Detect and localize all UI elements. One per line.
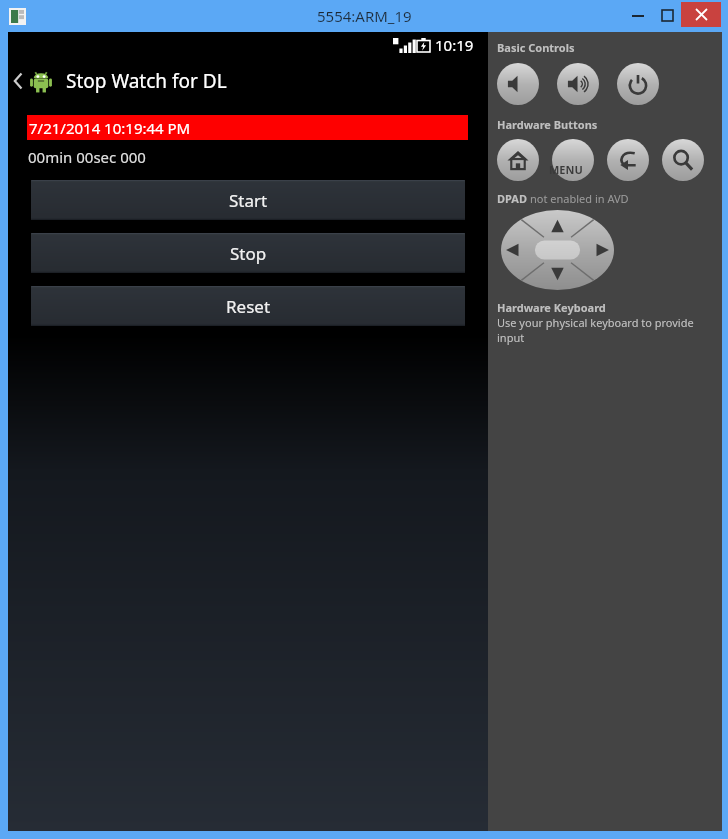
button[interactable]: Back xyxy=(607,139,649,181)
button[interactable]: Menu xyxy=(552,139,594,181)
staticText: 7/21/2014 10:19:44 PM xyxy=(29,118,191,138)
button[interactable]: Power xyxy=(617,63,659,105)
staticText: Hardware Keyboard xyxy=(497,300,606,315)
other: Emulator icon xyxy=(9,8,26,25)
staticText: Basic Controls xyxy=(497,40,575,55)
staticText: 5554:ARM_19 xyxy=(317,6,412,26)
button[interactable]: Home xyxy=(497,139,539,181)
button[interactable]: Volume down xyxy=(497,63,539,105)
button[interactable]: Close xyxy=(681,2,721,27)
button[interactable]: Stop xyxy=(31,233,465,273)
staticText: DPAD xyxy=(497,191,530,206)
button[interactable]: Search xyxy=(662,139,704,181)
staticText: Stop xyxy=(230,242,267,265)
button[interactable]: Minimize xyxy=(623,0,653,30)
staticText: Use your physical keyboard to provide in… xyxy=(497,315,722,345)
staticText: Reset xyxy=(226,295,271,318)
button[interactable]: Reset xyxy=(31,286,465,326)
staticText: 10:19 xyxy=(435,35,474,55)
staticText: Start xyxy=(229,189,268,212)
button[interactable]: Volume up xyxy=(557,63,599,105)
button[interactable]: Start xyxy=(31,180,465,220)
staticText: not enabled in AVD xyxy=(530,191,629,206)
staticText: MENU xyxy=(549,162,583,177)
staticText: Hardware Buttons xyxy=(497,117,598,132)
staticText: Stop Watch for DL xyxy=(66,68,227,94)
staticText: 00min 00sec 000 xyxy=(28,147,146,167)
button[interactable]: Navigate up xyxy=(8,68,58,94)
button[interactable]: Maximize xyxy=(652,0,682,30)
